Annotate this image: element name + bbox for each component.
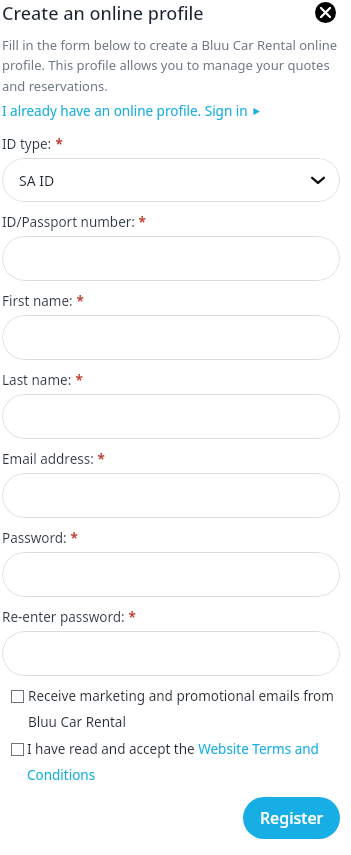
button[interactable]: Receive marketing emails <box>11 690 24 703</box>
staticText: * <box>72 371 83 389</box>
button[interactable]: I already have an online profile. Sign i… <box>2 102 261 120</box>
staticText: Email address: <box>2 450 94 468</box>
button[interactable]: Text input <box>2 236 340 281</box>
staticText: * <box>135 213 146 231</box>
staticText: ID/Passport number: <box>2 213 135 231</box>
button[interactable]: Text input <box>2 631 340 676</box>
button[interactable]: Accept terms <box>2 740 340 784</box>
staticText: * <box>67 529 78 547</box>
staticText: * <box>52 135 63 153</box>
staticText: * <box>125 608 136 626</box>
button[interactable]: Text input <box>2 394 340 439</box>
staticText: Fill in the form below to create a Bluu … <box>2 36 340 95</box>
staticText: ID type: <box>2 135 52 153</box>
staticText: * <box>94 450 105 468</box>
staticText: Last name: <box>2 371 72 389</box>
staticText: Register <box>260 807 324 829</box>
button[interactable]: Accept terms <box>11 743 24 756</box>
staticText: First name: <box>2 292 73 310</box>
staticText: Password: <box>2 529 67 547</box>
button[interactable]: SA ID <box>2 158 340 202</box>
button[interactable]: Text input <box>2 473 340 518</box>
staticText: Receive marketing and promotional emails… <box>28 687 340 731</box>
staticText: * <box>73 292 84 310</box>
staticText: Re-enter password: <box>2 608 125 626</box>
button[interactable]: Text input <box>2 315 340 360</box>
button[interactable]: Receive marketing emails <box>2 687 340 731</box>
button[interactable]: Close <box>315 2 336 23</box>
button[interactable]: Text input <box>2 552 340 597</box>
staticText: Create an online profile <box>2 1 204 26</box>
staticText: I already have an online profile. Sign i… <box>2 102 248 120</box>
staticText: SA ID <box>19 171 55 190</box>
button[interactable]: Register <box>243 797 340 839</box>
staticText: I have read and accept the Website Terms… <box>27 740 340 784</box>
